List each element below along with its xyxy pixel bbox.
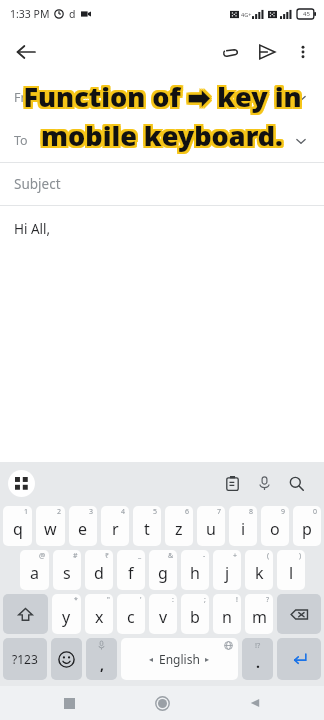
staticText: d (94, 562, 104, 584)
button[interactable]: Backspace (277, 594, 321, 634)
staticText: f (128, 562, 134, 584)
button[interactable]: + (213, 550, 241, 590)
button[interactable]: - (181, 550, 209, 590)
button[interactable]: ( (245, 550, 273, 590)
button[interactable]: 4 (101, 506, 129, 546)
button[interactable]: Clipboard (216, 467, 248, 499)
staticText: g (158, 562, 168, 584)
button[interactable]: From (0, 76, 324, 119)
staticText: ! (236, 595, 238, 605)
button[interactable]: 6 (165, 506, 193, 546)
button[interactable]: ! (213, 594, 241, 634)
staticText: & (168, 551, 174, 561)
staticText: h (190, 562, 200, 584)
staticText: u (206, 518, 216, 540)
button[interactable]: 0 (293, 506, 321, 546)
staticText: 4G+ (241, 11, 252, 18)
staticText: ( (267, 551, 270, 561)
staticText: Function of ➡ key in (25, 80, 304, 117)
staticText: p (302, 518, 312, 540)
staticText: mobile keyboard. (43, 117, 285, 154)
staticText: To (14, 132, 28, 149)
staticText: ) (299, 551, 302, 561)
button[interactable]: @ (20, 550, 49, 590)
button[interactable]: Voice input (248, 467, 280, 499)
staticText: x (95, 606, 104, 628)
button[interactable]: " (85, 594, 113, 634)
button[interactable]: ? (245, 594, 273, 634)
staticText: Function of ➡ key in (25, 76, 304, 113)
button[interactable]: 1 (3, 506, 32, 546)
staticText: l (289, 562, 294, 584)
button[interactable]: Subject (0, 163, 324, 205)
staticText: 5 (153, 507, 158, 517)
staticText: 45 (303, 10, 310, 18)
button[interactable]: 9 (261, 506, 289, 546)
staticText: 7 (217, 507, 222, 517)
staticText: ? (266, 595, 270, 605)
staticText: !? (255, 640, 261, 650)
button[interactable]: & (149, 550, 177, 590)
button[interactable]: Expand To (288, 128, 314, 154)
staticText: mobile keyboard. (39, 117, 281, 154)
button[interactable]: ◂ (121, 638, 238, 680)
staticText: Function of ➡ key in (23, 80, 302, 117)
button[interactable]: Home (142, 686, 182, 720)
staticText: 1 (24, 507, 29, 517)
staticText: o (270, 518, 280, 540)
button[interactable]: To (0, 119, 324, 162)
staticText: # (73, 551, 78, 561)
staticText: w (44, 518, 57, 540)
button[interactable]: * (52, 594, 81, 634)
staticText: v (159, 606, 168, 628)
staticText: From (14, 89, 45, 106)
staticText: j (225, 562, 230, 584)
button[interactable]: Attach file (210, 33, 248, 71)
button[interactable]: ' (117, 594, 145, 634)
button[interactable]: _ (117, 550, 145, 590)
button[interactable]: Back (235, 686, 275, 720)
staticText: @ (39, 551, 46, 561)
staticText: mobile keyboard. (43, 115, 285, 152)
staticText: 2 (57, 507, 62, 517)
button[interactable]: Send (248, 33, 286, 71)
staticText: i (241, 518, 246, 540)
button[interactable]: 8 (229, 506, 257, 546)
staticText: Function of ➡ key in (23, 76, 302, 113)
button[interactable]: More options (286, 35, 320, 69)
staticText: : (172, 595, 174, 605)
staticText: Function of ➡ key in (21, 78, 300, 115)
button[interactable]: : (149, 594, 177, 634)
button[interactable]: Expand From (288, 85, 314, 111)
button[interactable]: ; (181, 594, 209, 634)
button[interactable]: Recents (49, 686, 89, 720)
staticText: mobile keyboard. (41, 115, 283, 152)
staticText: ◂ (149, 655, 154, 664)
button[interactable]: Shift (3, 594, 48, 634)
button[interactable]: Period (242, 638, 273, 680)
button[interactable]: Keyboard menu (8, 470, 35, 497)
button[interactable]: Comma (86, 638, 117, 680)
staticText: k (255, 562, 264, 584)
staticText: mobile keyboard. (43, 119, 285, 156)
button[interactable]: ₹ (85, 550, 113, 590)
button[interactable]: # (53, 550, 81, 590)
button[interactable]: ) (277, 550, 305, 590)
staticText: + (233, 551, 238, 561)
staticText: 1:33 PM (10, 7, 50, 21)
staticText: ▸ (205, 655, 210, 664)
button[interactable]: 3 (69, 506, 97, 546)
staticText: n (222, 606, 232, 628)
button[interactable]: 2 (36, 506, 65, 546)
button[interactable]: Search (280, 467, 312, 499)
button[interactable]: 7 (197, 506, 225, 546)
staticText: y (62, 606, 71, 628)
button[interactable]: Enter (277, 638, 321, 680)
button[interactable]: Emoji (51, 638, 82, 680)
staticText: mobile keyboard. (41, 117, 283, 154)
button[interactable]: ?123 (3, 638, 47, 680)
staticText: 0 (313, 507, 318, 517)
staticText: r (112, 518, 119, 540)
button[interactable]: 5 (133, 506, 161, 546)
button[interactable]: Back (6, 32, 46, 72)
